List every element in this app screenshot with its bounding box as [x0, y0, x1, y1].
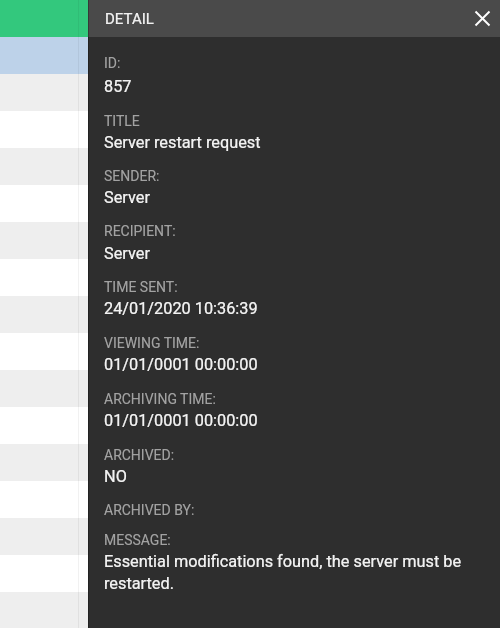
button[interactable]	[0, 148, 500, 185]
staticText: SENDER:	[104, 168, 492, 184]
staticText: ARCHIVED:	[104, 447, 492, 463]
button[interactable]	[0, 592, 500, 628]
button[interactable]	[0, 407, 500, 444]
staticText: Server	[104, 188, 492, 207]
staticText: MESSAGE:	[104, 532, 492, 548]
staticText: Server	[104, 244, 492, 263]
button[interactable]	[0, 296, 500, 333]
staticText: ARCHIVING TIME:	[104, 391, 492, 407]
staticText: Essential modifications found, the serve…	[104, 552, 484, 593]
staticText: ID:	[104, 55, 492, 71]
button[interactable]	[0, 185, 500, 222]
staticText: 24/01/2020 10:36:39	[104, 299, 492, 318]
staticText: RECIPIENT:	[104, 223, 492, 239]
staticText: 01/01/0001 00:00:00	[104, 411, 492, 430]
button[interactable]	[0, 444, 500, 481]
button[interactable]	[0, 481, 500, 518]
button[interactable]	[0, 222, 500, 259]
button[interactable]: Close detail	[467, 3, 498, 34]
button[interactable]	[0, 111, 500, 148]
button[interactable]	[0, 370, 500, 407]
staticText: TITLE	[104, 113, 492, 129]
button[interactable]	[0, 333, 500, 370]
button[interactable]	[0, 555, 500, 592]
staticText: Server restart request	[104, 133, 492, 152]
staticText: DETAIL	[105, 10, 154, 28]
button[interactable]	[0, 0, 500, 37]
button[interactable]	[0, 259, 500, 296]
button[interactable]	[0, 518, 500, 555]
staticText: NO	[104, 467, 492, 486]
button[interactable]	[0, 37, 500, 74]
staticText: 01/01/0001 00:00:00	[104, 355, 492, 374]
staticText: ARCHIVED BY:	[104, 502, 492, 518]
staticText: VIEWING TIME:	[104, 335, 492, 351]
staticText: TIME SENT:	[104, 279, 492, 295]
staticText: 857	[104, 77, 492, 96]
button[interactable]	[0, 74, 500, 111]
